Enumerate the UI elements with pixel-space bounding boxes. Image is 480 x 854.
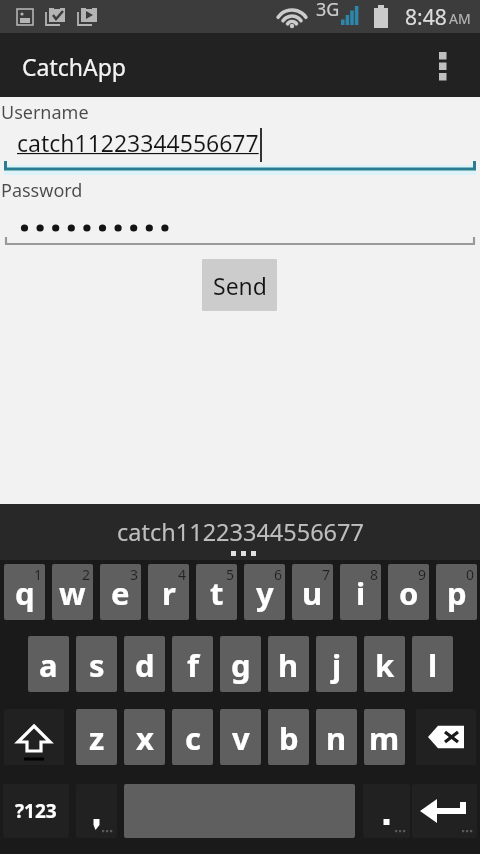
button[interactable] [0, 203, 480, 248]
staticText: Username [1, 100, 89, 125]
staticText: i [356, 572, 366, 614]
button[interactable]: q [4, 564, 45, 620]
staticText: t [210, 572, 224, 614]
staticText: 1 [34, 565, 43, 584]
staticText: catch11223344556677 [17, 127, 259, 158]
staticText: 8 [370, 565, 379, 584]
staticText: l [428, 644, 438, 686]
staticText: s [89, 644, 105, 686]
staticText: 3 [130, 565, 139, 584]
staticText: 6 [274, 565, 283, 584]
button[interactable]: Shift [4, 709, 64, 765]
button[interactable]: Delete [416, 709, 476, 765]
staticText: d [135, 644, 155, 686]
staticText: j [332, 644, 342, 686]
button[interactable]: x [124, 709, 165, 765]
staticText: q [15, 572, 35, 614]
button[interactable]: e [100, 564, 141, 620]
button[interactable]: s [76, 636, 117, 692]
staticText: 5 [226, 565, 235, 584]
staticText: CatchApp [22, 51, 126, 82]
staticText: Send [213, 270, 267, 301]
button[interactable]: h [268, 636, 309, 692]
staticText: n [326, 717, 347, 759]
button[interactable]: v [220, 709, 261, 765]
staticText: 7 [322, 565, 331, 584]
staticText: 3G [316, 0, 340, 22]
button[interactable]: k [364, 636, 405, 692]
staticText: w [59, 572, 86, 614]
button[interactable]: More options [415, 33, 471, 97]
staticText: 2 [82, 565, 91, 584]
staticText: h [278, 644, 299, 686]
button[interactable]: d [124, 636, 165, 692]
staticText: z [89, 717, 105, 759]
staticText: 9 [418, 565, 427, 584]
button[interactable]: j [316, 636, 357, 692]
staticText: x [136, 717, 154, 759]
button[interactable]: a [28, 636, 69, 692]
staticText: v [232, 717, 250, 759]
button[interactable]: p [436, 564, 477, 620]
staticText: r [162, 572, 176, 614]
button[interactable]: Enter [412, 784, 477, 838]
button[interactable]: g [220, 636, 261, 692]
staticText: u [302, 572, 323, 614]
staticText: 8:48 [405, 3, 447, 32]
staticText: k [375, 644, 395, 686]
staticText: ?123 [15, 798, 57, 824]
button[interactable] [76, 784, 117, 838]
staticText: f [187, 644, 199, 686]
staticText: b [279, 717, 299, 759]
staticText: 0 [466, 565, 475, 584]
button[interactable]: f [172, 636, 213, 692]
staticText: y [256, 572, 274, 614]
button[interactable]: l [412, 636, 453, 692]
button[interactable]: catch11223344556677 [0, 125, 480, 170]
staticText: c [185, 717, 201, 759]
button[interactable]: n [316, 709, 357, 765]
staticText: Password [1, 178, 83, 203]
staticText: a [39, 644, 58, 686]
staticText: catch11223344556677 [117, 516, 364, 548]
staticText: 4 [178, 565, 187, 584]
button[interactable]: z [76, 709, 117, 765]
staticText: o [399, 572, 419, 614]
button[interactable]: ?123 [3, 784, 69, 838]
button[interactable]: w [52, 564, 93, 620]
button[interactable]: r [148, 564, 189, 620]
button[interactable]: t [196, 564, 237, 620]
button[interactable]: u [292, 564, 333, 620]
staticText: p [447, 572, 467, 614]
button[interactable] [363, 784, 410, 838]
button[interactable]: i [340, 564, 381, 620]
button[interactable]: y [244, 564, 285, 620]
button[interactable]: c [172, 709, 213, 765]
button[interactable]: m [364, 709, 405, 765]
button[interactable]: b [268, 709, 309, 765]
button[interactable]: o [388, 564, 429, 620]
staticText: e [111, 572, 130, 614]
staticText: g [231, 644, 251, 686]
staticText: AM [449, 9, 471, 28]
staticText: m [369, 717, 400, 759]
button[interactable]: Send [202, 259, 277, 311]
